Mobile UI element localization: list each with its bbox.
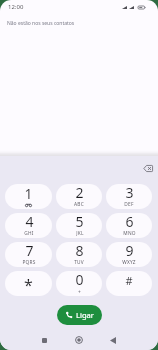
staticText: Ligar	[76, 310, 95, 320]
staticText: #	[125, 273, 133, 288]
staticText: WXYZ	[122, 259, 136, 265]
staticText: 5	[75, 213, 84, 231]
button[interactable]: *	[5, 271, 52, 296]
staticText: +	[78, 289, 81, 295]
button[interactable]: 6	[106, 213, 152, 238]
button[interactable]: 7	[5, 242, 52, 267]
staticText: 0	[75, 271, 84, 289]
button[interactable]: #	[106, 271, 152, 296]
staticText: 8	[75, 242, 84, 260]
button[interactable]: 5	[56, 213, 102, 238]
button[interactable]: Ligar	[57, 305, 102, 325]
button[interactable]: Back	[105, 332, 121, 348]
button[interactable]: 3	[106, 184, 152, 209]
staticText: DEF	[124, 201, 134, 207]
button[interactable]: Backspace	[141, 161, 155, 175]
staticText: GHI	[24, 230, 34, 236]
staticText: TUV	[74, 259, 84, 265]
staticText: PQRS	[22, 259, 36, 265]
button[interactable]: Recent apps	[36, 332, 52, 348]
staticText: 4	[25, 213, 34, 231]
button[interactable]: 0	[56, 271, 102, 296]
button[interactable]: 2	[56, 184, 102, 209]
staticText: 1	[24, 184, 33, 203]
staticText: 2	[75, 184, 84, 202]
staticText: ABC	[74, 201, 84, 207]
button[interactable]: Home	[71, 332, 87, 348]
button[interactable]: 1	[5, 184, 52, 209]
staticText: *	[24, 274, 33, 296]
button[interactable]: 4	[5, 213, 52, 238]
button[interactable]: 8	[56, 242, 102, 267]
staticText: Não estão nos seus contatos	[7, 20, 75, 27]
button[interactable]: 9	[106, 242, 152, 267]
staticText: 7	[25, 242, 34, 260]
staticText: 12:00	[8, 3, 24, 11]
staticText: 6	[125, 213, 134, 231]
staticText: 9	[125, 242, 134, 260]
staticText: 3	[125, 184, 134, 202]
staticText: JKL	[76, 230, 84, 236]
staticText: MNO	[123, 230, 136, 236]
